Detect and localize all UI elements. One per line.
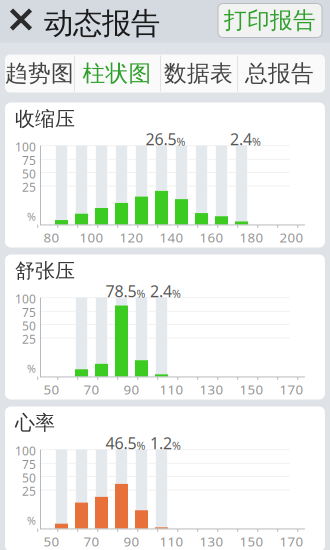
staticText: 100 — [15, 139, 36, 155]
staticText: 数据表 — [164, 60, 233, 87]
staticText: 170 — [279, 532, 303, 550]
staticText: 130 — [199, 532, 223, 550]
staticText: 舒张压 — [15, 258, 75, 283]
staticText: 110 — [159, 532, 183, 550]
staticText: 50 — [22, 166, 36, 182]
staticText: 90 — [123, 532, 139, 550]
staticText: 180 — [239, 228, 263, 246]
staticText: 趋势图 — [5, 60, 74, 87]
button[interactable]: 趋势图 — [5, 54, 74, 92]
staticText: 78.5 — [105, 280, 136, 302]
button[interactable]: 总报告 — [237, 54, 322, 92]
staticText: 50 — [22, 318, 36, 334]
staticText: 100 — [79, 228, 103, 246]
staticText: 70 — [83, 380, 99, 398]
button[interactable]: 数据表 — [160, 54, 237, 92]
staticText: 140 — [159, 228, 183, 246]
staticText: 25 — [22, 483, 36, 499]
staticText: % — [136, 439, 145, 453]
staticText: 100 — [15, 443, 36, 459]
staticText: 25 — [22, 179, 36, 195]
staticText: 150 — [239, 380, 263, 398]
staticText: 150 — [239, 532, 263, 550]
staticText: % — [27, 209, 36, 224]
staticText: 收缩压 — [15, 106, 75, 131]
staticText: 心率 — [15, 410, 55, 435]
staticText: % — [172, 439, 181, 453]
staticText: 26.5 — [145, 128, 176, 150]
staticText: % — [252, 135, 261, 149]
staticText: 80 — [43, 228, 59, 246]
staticText: 110 — [159, 380, 183, 398]
staticText: 打印报告 — [224, 7, 316, 34]
staticText: 2.4 — [230, 128, 252, 150]
staticText: 50 — [43, 380, 59, 398]
staticText: 200 — [279, 228, 303, 246]
staticText: 总报告 — [245, 60, 314, 87]
staticText: 90 — [123, 380, 139, 398]
staticText: 46.5 — [105, 432, 136, 454]
staticText: % — [176, 135, 185, 149]
staticText: 70 — [83, 532, 99, 550]
button[interactable]: Close — [0, 0, 42, 42]
staticText: 120 — [119, 228, 143, 246]
staticText: 75 — [22, 304, 36, 320]
staticText: 柱状图 — [82, 60, 151, 87]
staticText: 1.2 — [150, 432, 172, 454]
button[interactable]: 打印报告 — [218, 3, 322, 37]
staticText: 2.4 — [150, 280, 172, 302]
staticText: % — [27, 361, 36, 376]
staticText: 25 — [22, 331, 36, 347]
staticText: % — [27, 513, 36, 528]
staticText: 170 — [279, 380, 303, 398]
staticText: 动态报告 — [44, 5, 160, 41]
button[interactable]: 柱状图 — [74, 54, 160, 92]
staticText: 75 — [22, 456, 36, 472]
staticText: % — [136, 287, 145, 301]
staticText: 50 — [43, 532, 59, 550]
staticText: 100 — [15, 291, 36, 307]
staticText: 50 — [22, 470, 36, 486]
staticText: 130 — [199, 380, 223, 398]
staticText: 75 — [22, 152, 36, 168]
staticText: 160 — [199, 228, 223, 246]
staticText: % — [172, 287, 181, 301]
